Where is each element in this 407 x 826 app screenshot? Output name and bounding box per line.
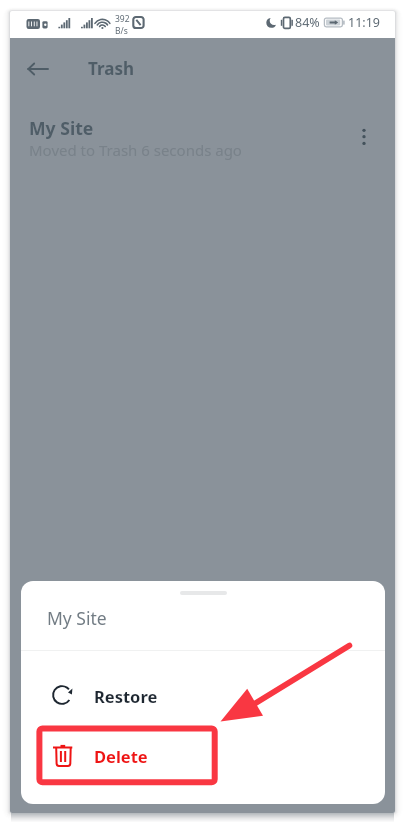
button[interactable]: Delete bbox=[21, 725, 385, 786]
staticText: 84% bbox=[295, 14, 320, 31]
staticText: 11:19 bbox=[348, 14, 380, 31]
staticText: B/s bbox=[115, 25, 128, 37]
button[interactable]: Restore bbox=[21, 665, 385, 725]
button[interactable]: My Site bbox=[10, 99, 395, 158]
staticText: 392 bbox=[115, 13, 130, 25]
staticText: Moved to Trash 6 seconds ago bbox=[29, 140, 242, 160]
button[interactable]: Navigate up bbox=[14, 45, 62, 93]
staticText: My Site bbox=[47, 606, 107, 630]
staticText: Delete bbox=[94, 745, 148, 767]
button[interactable]: More options bbox=[342, 115, 386, 159]
staticText: Trash bbox=[88, 57, 134, 80]
staticText: Restore bbox=[94, 685, 158, 707]
staticText: My Site bbox=[29, 116, 94, 140]
